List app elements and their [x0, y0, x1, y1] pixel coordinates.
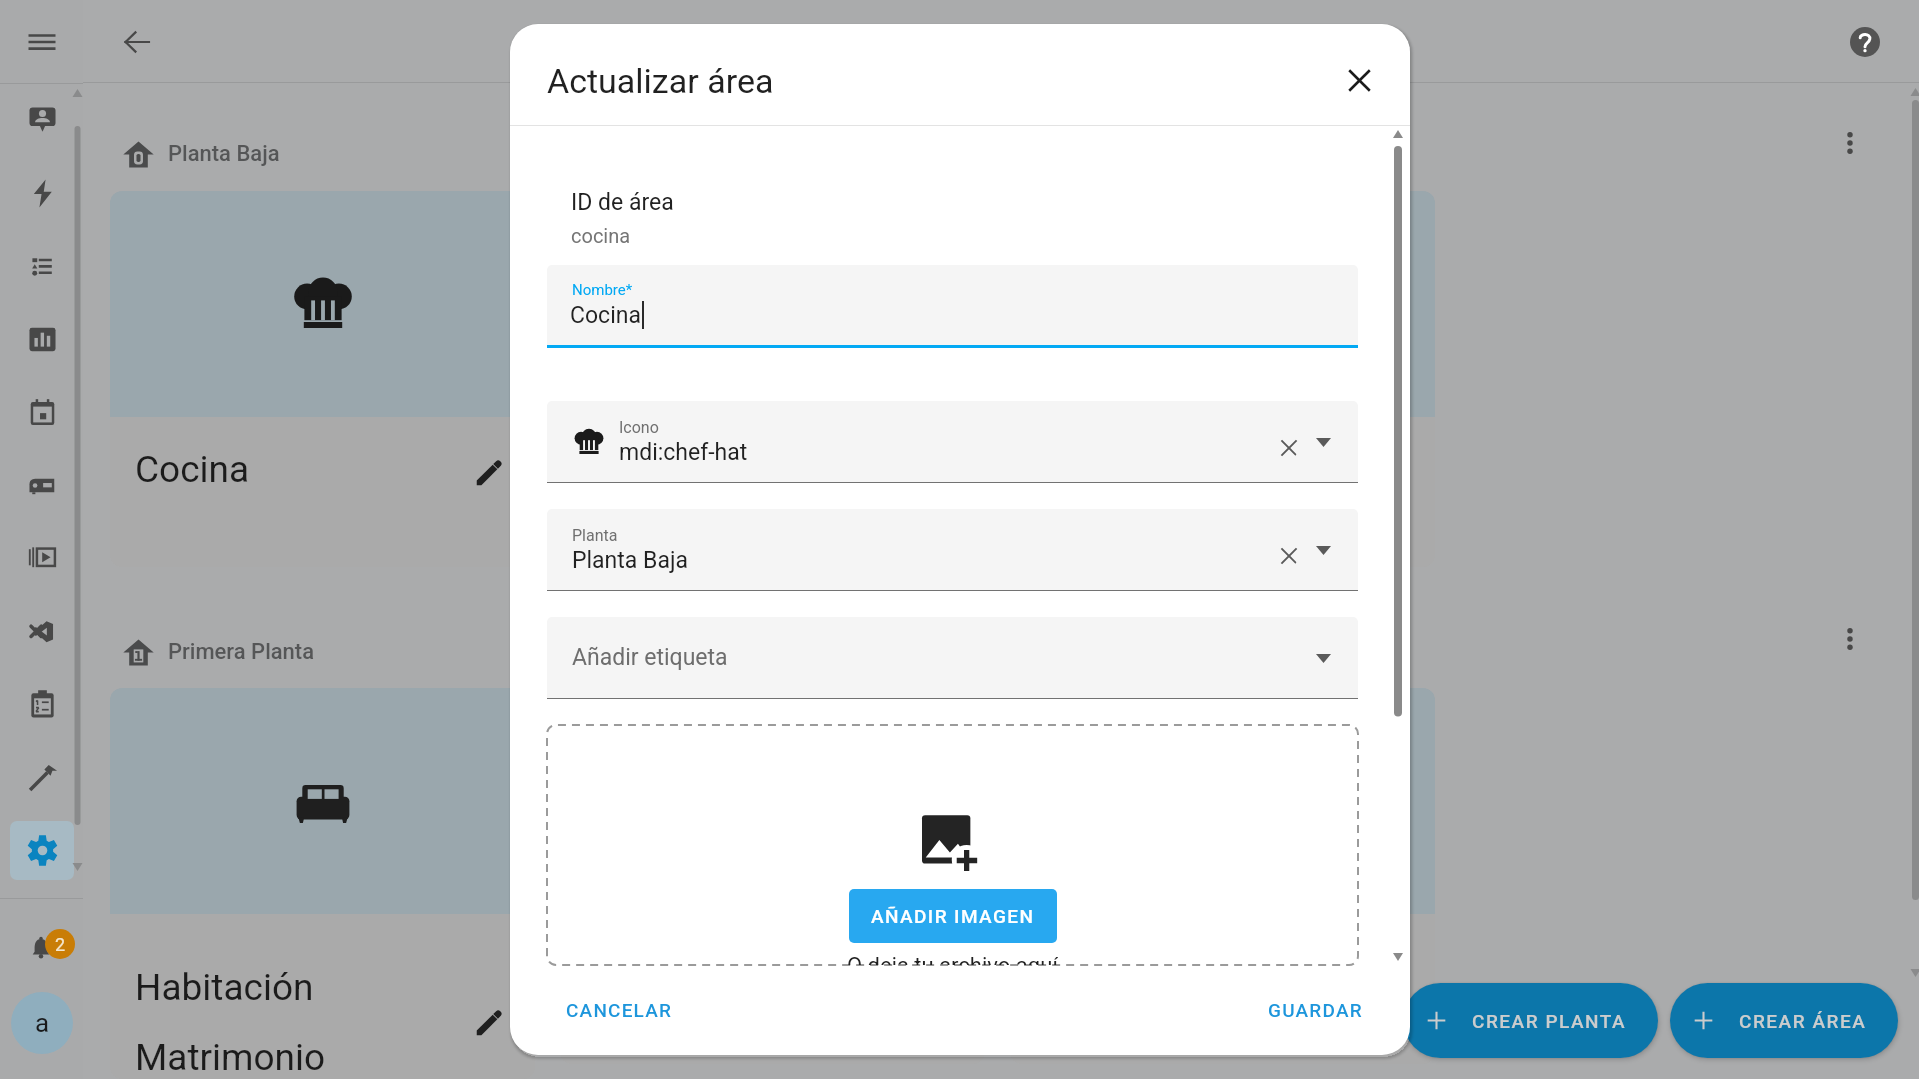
- button[interactable]: Habitación Matrimonio: [110, 688, 535, 1079]
- staticText: Cocina: [570, 302, 641, 329]
- button[interactable]: Navegación 2: [10, 237, 74, 296]
- staticText: CREAR PLANTA: [1472, 1010, 1627, 1032]
- button[interactable]: Navegación 0: [10, 91, 74, 150]
- button[interactable]: Navegación 8: [10, 675, 74, 734]
- staticText: Habitación Matrimonio: [135, 966, 465, 1079]
- button[interactable]: Navegación 10: [10, 821, 74, 880]
- button[interactable]: Navegación 3: [10, 310, 74, 369]
- staticText: ID de área: [571, 189, 674, 216]
- button[interactable]: Navegación 7: [10, 602, 74, 661]
- staticText: Cocina: [1035, 448, 1365, 491]
- staticText: Habitación Matrimonio: [1035, 945, 1365, 1058]
- button[interactable]: Editar: [1365, 945, 1413, 993]
- staticText: O deja tu archivo aquí: [847, 953, 1058, 965]
- button[interactable]: CANCELAR: [552, 989, 687, 1031]
- button[interactable]: Desplegar: [1300, 638, 1346, 678]
- staticText: AÑADIR IMAGEN: [871, 905, 1035, 927]
- button[interactable]: Borrar: [1254, 527, 1300, 573]
- staticText: Actualizar área: [547, 61, 774, 101]
- button[interactable]: Añadir etiqueta: [547, 617, 1358, 698]
- button[interactable]: Editar: [915, 448, 963, 496]
- button[interactable]: Notificaciones: [11, 920, 77, 972]
- button[interactable]: Menú: [18, 18, 66, 66]
- staticText: Planta Baja: [572, 547, 688, 574]
- button[interactable]: Planta: [547, 509, 1358, 590]
- button[interactable]: Cerrar: [1333, 54, 1385, 106]
- staticText: CANCELAR: [566, 999, 673, 1021]
- button[interactable]: Desplegar: [1300, 530, 1346, 570]
- button[interactable]: Editar: [1365, 448, 1413, 496]
- staticText: Cocina: [135, 448, 465, 491]
- button[interactable]: Desplegar: [1300, 422, 1346, 462]
- button[interactable]: Más opciones: [1826, 119, 1874, 167]
- button[interactable]: a: [11, 992, 73, 1054]
- staticText: 2: [55, 934, 66, 955]
- staticText: cocina: [571, 224, 631, 247]
- button[interactable]: Más opciones: [1826, 615, 1874, 663]
- button[interactable]: AÑADIR IMAGEN: [849, 889, 1057, 943]
- staticText: Nombre*: [572, 281, 633, 299]
- button[interactable]: Habitación Matrimonio: [560, 688, 985, 1064]
- button[interactable]: Nombre*: [547, 265, 1358, 345]
- button[interactable]: Navegación 9: [10, 748, 74, 807]
- button[interactable]: Habitación Matrimonio: [1010, 688, 1435, 1064]
- button[interactable]: Cocina: [110, 191, 535, 567]
- button[interactable]: Navegación 4: [10, 383, 74, 442]
- staticText: Primera Planta: [168, 639, 315, 665]
- button[interactable]: Cocina: [560, 191, 985, 567]
- staticText: CREAR ÁREA: [1739, 1010, 1867, 1032]
- button[interactable]: GUARDAR: [1254, 989, 1377, 1031]
- button[interactable]: Ayuda: [1841, 18, 1889, 66]
- staticText: a: [35, 1008, 50, 1038]
- staticText: Habitación Matrimonio: [585, 945, 915, 1058]
- button[interactable]: CREAR ÁREA: [1670, 983, 1898, 1058]
- staticText: mdi:chef-hat: [619, 439, 748, 466]
- staticText: GUARDAR: [1268, 999, 1363, 1021]
- staticText: Planta Baja: [168, 141, 280, 167]
- staticText: Cocina: [585, 448, 915, 491]
- button[interactable]: Atrás: [113, 18, 161, 66]
- button[interactable]: Navegación 1: [10, 164, 74, 223]
- button[interactable]: Navegación 5: [10, 456, 74, 515]
- staticText: Icono: [619, 418, 659, 437]
- button[interactable]: Editar: [465, 966, 513, 1079]
- button[interactable]: CREAR PLANTA: [1403, 983, 1658, 1058]
- staticText: Planta: [572, 526, 618, 545]
- button[interactable]: Editar: [465, 448, 513, 496]
- button[interactable]: Editar: [915, 945, 963, 993]
- button[interactable]: Icono: [547, 401, 1358, 482]
- staticText: Añadir etiqueta: [572, 644, 728, 671]
- button[interactable]: Cocina: [1010, 191, 1435, 567]
- button[interactable]: Navegación 6: [10, 529, 74, 588]
- button[interactable]: Borrar: [1254, 419, 1300, 465]
